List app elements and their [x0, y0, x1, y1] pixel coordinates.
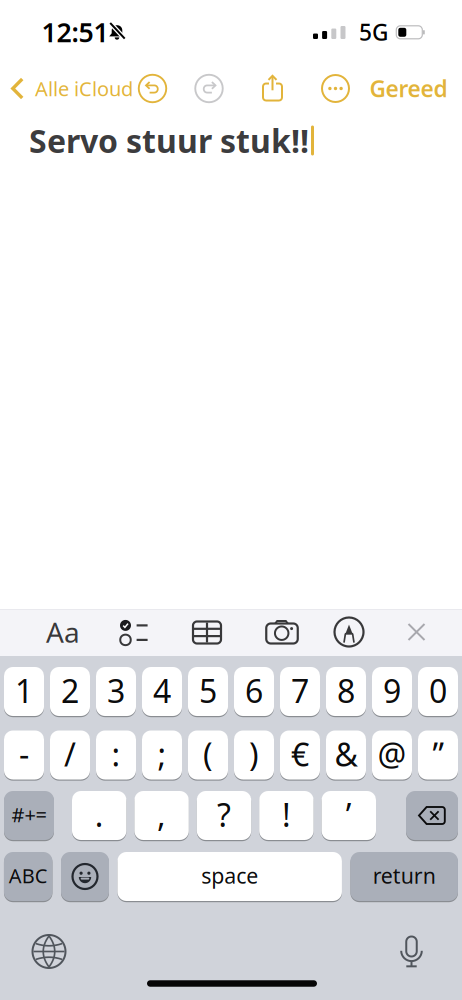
button[interactable]: Camera: [266, 620, 298, 644]
button[interactable]: 9: [372, 665, 412, 717]
staticText: (: [203, 733, 213, 775]
button[interactable]: Emoji: [61, 850, 109, 902]
staticText: 1: [15, 669, 33, 712]
button[interactable]: Undo: [138, 74, 167, 103]
staticText: Aa: [46, 613, 80, 651]
button[interactable]: #+=: [4, 789, 54, 841]
staticText: 0: [429, 669, 447, 712]
staticText: !: [282, 793, 291, 836]
button[interactable]: More: [322, 75, 349, 102]
staticText: ”: [432, 733, 443, 775]
staticText: 2: [61, 669, 79, 712]
staticText: @: [377, 733, 406, 775]
button[interactable]: Gereed: [369, 73, 447, 103]
staticText: 5: [199, 669, 217, 712]
staticText: €: [291, 733, 309, 775]
staticText: 12:51: [41, 14, 108, 50]
button[interactable]: 2: [50, 665, 90, 717]
button[interactable]: 5: [188, 665, 228, 717]
button[interactable]: 3: [96, 665, 136, 717]
button[interactable]: Share: [262, 74, 283, 101]
staticText: #+=: [11, 801, 46, 828]
button[interactable]: 0: [418, 665, 458, 717]
button[interactable]: ,: [134, 789, 189, 841]
button[interactable]: ”: [418, 729, 458, 781]
staticText: ,: [157, 793, 166, 836]
staticText: Alle iCloud: [35, 75, 133, 102]
button[interactable]: .: [72, 789, 126, 841]
staticText: /: [64, 733, 76, 775]
button[interactable]: Dismiss keyboard: [407, 622, 426, 641]
staticText: ): [249, 733, 259, 775]
button[interactable]: Table: [193, 621, 221, 643]
button[interactable]: Markup: [334, 617, 364, 647]
button[interactable]: ABC: [4, 850, 52, 902]
staticText: ABC: [9, 862, 48, 889]
staticText: 9: [383, 669, 401, 712]
staticText: 4: [153, 669, 171, 712]
button[interactable]: 4: [142, 665, 182, 717]
button[interactable]: Redo: [194, 74, 223, 103]
button[interactable]: Back to Alle iCloud: [10, 75, 133, 102]
button[interactable]: ;: [142, 729, 182, 781]
button[interactable]: 6: [234, 665, 274, 717]
button[interactable]: €: [280, 729, 320, 781]
button[interactable]: (: [188, 729, 228, 781]
button[interactable]: &: [326, 729, 366, 781]
button[interactable]: ’: [322, 789, 376, 841]
button[interactable]: Format: [46, 613, 80, 651]
staticText: -: [19, 733, 29, 775]
staticText: 8: [337, 669, 355, 712]
button[interactable]: Delete: [406, 789, 458, 841]
staticText: Gereed: [369, 73, 447, 103]
staticText: 5G: [359, 17, 388, 47]
staticText: 7: [291, 669, 309, 712]
staticText: return: [373, 861, 436, 890]
button[interactable]: 7: [280, 665, 320, 717]
button[interactable]: !: [259, 789, 314, 841]
button[interactable]: Dictation: [399, 935, 423, 967]
button[interactable]: return: [350, 850, 458, 902]
button[interactable]: 8: [326, 665, 366, 717]
staticText: space: [201, 861, 258, 890]
staticText: :: [111, 733, 120, 775]
staticText: 6: [245, 669, 263, 712]
button[interactable]: space: [117, 850, 342, 902]
button[interactable]: 1: [4, 665, 44, 717]
button[interactable]: @: [372, 729, 412, 781]
button[interactable]: :: [96, 729, 136, 781]
button[interactable]: ?: [197, 789, 251, 841]
button[interactable]: ): [234, 729, 274, 781]
button[interactable]: -: [4, 729, 44, 781]
staticText: ?: [217, 793, 231, 836]
staticText: ;: [157, 733, 166, 775]
button[interactable]: Next keyboard: [32, 935, 65, 968]
staticText: Servo stuur stuk!!: [29, 119, 309, 162]
staticText: 3: [107, 669, 125, 712]
button[interactable]: Checklist: [120, 620, 148, 645]
staticText: .: [95, 793, 104, 836]
staticText: &: [334, 733, 357, 775]
staticText: ’: [346, 793, 352, 836]
button[interactable]: /: [50, 729, 90, 781]
